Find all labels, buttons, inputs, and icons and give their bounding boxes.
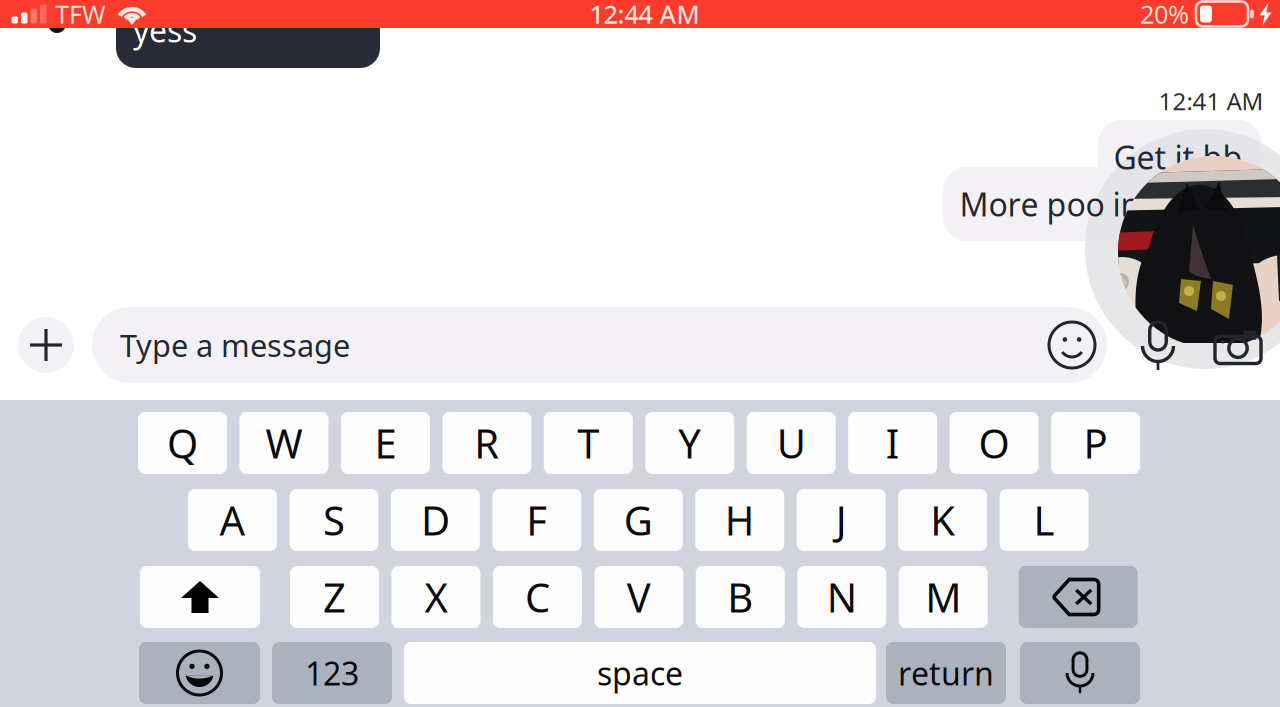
staticText: N — [827, 570, 857, 623]
button[interactable]: return — [886, 642, 1006, 704]
button[interactable]: D — [391, 489, 480, 551]
button[interactable]: Add attachment — [18, 317, 74, 373]
button[interactable]: Type a message — [92, 307, 1107, 383]
staticText: R — [474, 416, 499, 469]
button[interactable]: S — [289, 489, 378, 551]
staticText: Q — [167, 416, 198, 469]
button[interactable]: X — [391, 566, 480, 628]
button[interactable]: P — [1051, 412, 1140, 474]
staticText: Type a message — [120, 325, 350, 365]
button[interactable]: Z — [290, 566, 379, 628]
staticText: Get it bb — [1113, 136, 1242, 178]
button[interactable]: space — [404, 642, 876, 704]
staticText: F — [526, 493, 547, 546]
button[interactable]: A — [188, 489, 277, 551]
staticText: L — [1034, 493, 1055, 546]
staticText: B — [727, 570, 753, 623]
button[interactable]: J — [797, 489, 886, 551]
button[interactable]: F — [492, 489, 581, 551]
staticText: J — [836, 493, 847, 546]
staticText: H — [725, 493, 755, 546]
button[interactable]: U — [747, 412, 836, 474]
button[interactable]: G — [594, 489, 683, 551]
staticText: U — [777, 416, 806, 469]
button[interactable]: I — [848, 412, 937, 474]
staticText: V — [627, 570, 651, 623]
button[interactable]: T — [544, 412, 633, 474]
button[interactable]: H — [695, 489, 784, 551]
staticText: 12:44 AM — [589, 0, 699, 31]
staticText: T — [577, 416, 599, 469]
staticText: E — [374, 416, 396, 469]
staticText: D — [421, 493, 450, 546]
button[interactable]: W — [239, 412, 328, 474]
button[interactable]: 123 — [272, 642, 392, 704]
staticText: 20% — [1140, 0, 1189, 31]
button[interactable]: N — [797, 566, 886, 628]
button[interactable]: Camera — [1215, 327, 1261, 364]
button[interactable]: L — [1000, 489, 1089, 551]
staticText: P — [1084, 416, 1108, 469]
staticText: return — [898, 652, 994, 694]
button[interactable]: Shift — [140, 566, 260, 628]
staticText: O — [979, 416, 1010, 469]
button[interactable]: Y — [645, 412, 734, 474]
staticText: W — [265, 416, 302, 469]
staticText: TFW — [55, 0, 106, 31]
staticText: More poo in — [959, 183, 1140, 225]
button[interactable]: Dictate — [1020, 642, 1140, 704]
staticText: 123 — [305, 652, 359, 694]
button[interactable]: Q — [138, 412, 227, 474]
staticText: 12:41 AM — [1158, 85, 1263, 117]
button[interactable]: E — [341, 412, 430, 474]
staticText: Z — [323, 570, 346, 623]
button[interactable]: B — [696, 566, 785, 628]
staticText: K — [930, 493, 955, 546]
staticText: C — [525, 570, 550, 623]
button[interactable]: K — [898, 489, 987, 551]
staticText: S — [323, 493, 345, 546]
button[interactable]: Record voice message — [1139, 321, 1177, 371]
staticText: M — [925, 570, 961, 623]
staticText: G — [624, 493, 653, 546]
staticText: Y — [678, 416, 701, 469]
button[interactable]: O — [950, 412, 1039, 474]
button[interactable]: Emoji keyboard — [139, 642, 260, 704]
staticText: I — [886, 416, 900, 469]
staticText: yess — [133, 9, 197, 51]
button[interactable]: C — [493, 566, 582, 628]
staticText: space — [597, 652, 683, 694]
button[interactable]: M — [899, 566, 988, 628]
button[interactable]: Delete — [1019, 566, 1138, 628]
button[interactable]: R — [442, 412, 531, 474]
staticText: X — [424, 570, 447, 623]
staticText: A — [219, 493, 245, 546]
button[interactable]: V — [594, 566, 683, 628]
